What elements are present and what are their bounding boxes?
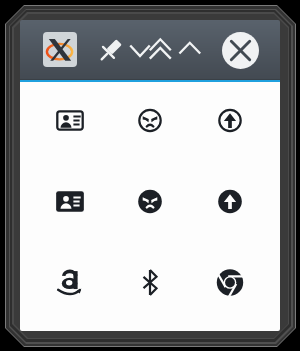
button[interactable]: Application icon	[43, 32, 77, 67]
button[interactable]: Expand	[176, 36, 204, 60]
button[interactable]: Angry face outline	[110, 80, 190, 161]
button[interactable]: Up arrow	[190, 161, 270, 242]
button[interactable]: Angry face	[110, 161, 190, 242]
button[interactable]: Amazon	[30, 242, 110, 323]
button[interactable]: Bluetooth	[110, 242, 190, 323]
button[interactable]: Up arrow outline	[190, 80, 270, 161]
button[interactable]: Contact card	[30, 161, 110, 242]
button[interactable]: Chrome browser	[190, 242, 270, 323]
button[interactable]: Collapse	[125, 38, 153, 62]
button[interactable]: Pin window	[92, 33, 128, 69]
button[interactable]: Close	[222, 32, 259, 69]
button[interactable]: Contact card outline	[30, 80, 110, 161]
button[interactable]: Expand all	[146, 34, 174, 62]
